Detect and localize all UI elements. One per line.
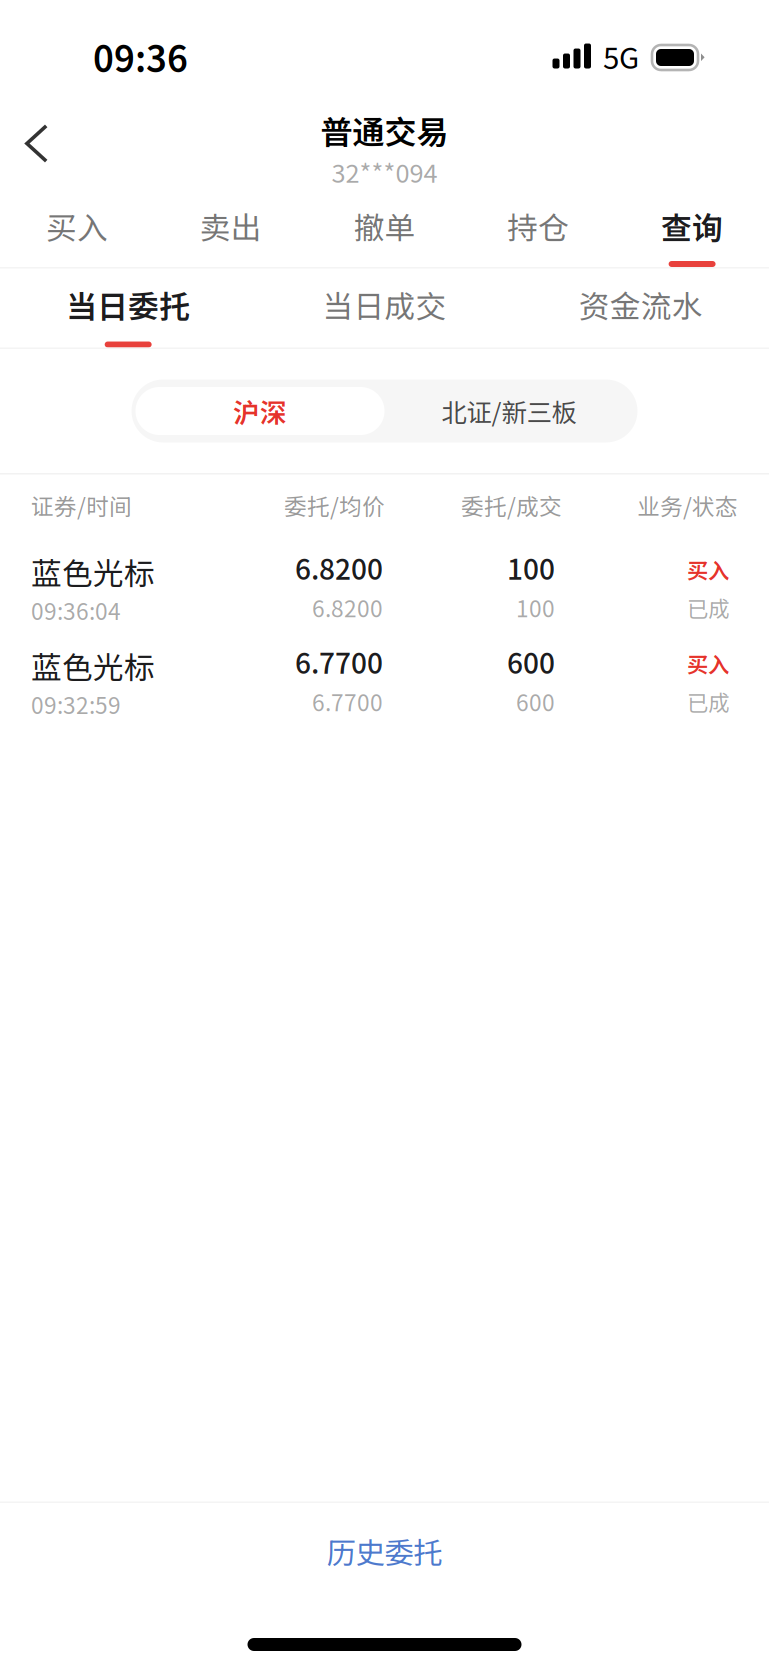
staticText: 6.8200 (295, 547, 383, 588)
button[interactable]: 沪深 (135, 387, 384, 435)
staticText: 委托/成交 (461, 489, 562, 521)
button[interactable]: 蓝色光标 (0, 541, 769, 635)
staticText: 已成 (687, 686, 729, 717)
staticText: 沪深 (233, 392, 287, 430)
staticText: 100 (516, 591, 555, 624)
staticText: 当日委托 (66, 282, 190, 326)
staticText: 买入 (687, 648, 729, 679)
button[interactable]: 卖出 (154, 194, 308, 267)
staticText: 6.7700 (295, 641, 383, 682)
button[interactable]: 资金流水 (513, 268, 769, 347)
button[interactable]: 查询 (615, 194, 769, 267)
staticText: 资金流水 (579, 282, 703, 326)
staticText: 买入 (46, 204, 108, 248)
staticText: 100 (507, 547, 555, 588)
staticText: 当日成交 (322, 282, 446, 326)
staticText: 卖出 (200, 204, 262, 248)
staticText: 查询 (661, 204, 723, 248)
staticText: 32***094 (331, 153, 437, 190)
staticText: 6.7700 (312, 685, 383, 718)
staticText: 历史委托 (326, 1530, 442, 1572)
button[interactable]: Back (0, 112, 74, 194)
button[interactable]: 北证/新三板 (384, 387, 633, 435)
button[interactable]: 当日成交 (256, 268, 513, 347)
staticText: 买入 (687, 554, 729, 585)
staticText: 撤单 (353, 204, 415, 248)
staticText: 业务/状态 (637, 489, 738, 521)
button[interactable]: 当日委托 (0, 268, 256, 347)
button[interactable]: 持仓 (461, 194, 615, 267)
staticText: 09:36:04 (31, 594, 121, 627)
staticText: 已成 (687, 592, 729, 623)
staticText: 蓝色光标 (31, 549, 155, 594)
staticText: 09:32:59 (31, 688, 121, 721)
staticText: 委托/均价 (284, 489, 385, 521)
staticText: 6.8200 (312, 591, 383, 624)
button[interactable]: 撤单 (308, 194, 461, 267)
staticText: 证券/时间 (31, 489, 132, 521)
staticText: 蓝色光标 (31, 643, 155, 688)
button[interactable]: 买入 (0, 194, 154, 267)
button[interactable]: 蓝色光标 (0, 635, 769, 729)
staticText: 持仓 (507, 204, 569, 248)
staticText: 5G (603, 35, 639, 77)
staticText: 09:36 (93, 30, 188, 82)
staticText: 600 (516, 685, 555, 718)
staticText: 600 (507, 641, 555, 682)
button[interactable]: 历史委托 (0, 1503, 769, 1599)
staticText: 北证/新三板 (441, 393, 576, 429)
staticText: 普通交易 (320, 107, 448, 153)
